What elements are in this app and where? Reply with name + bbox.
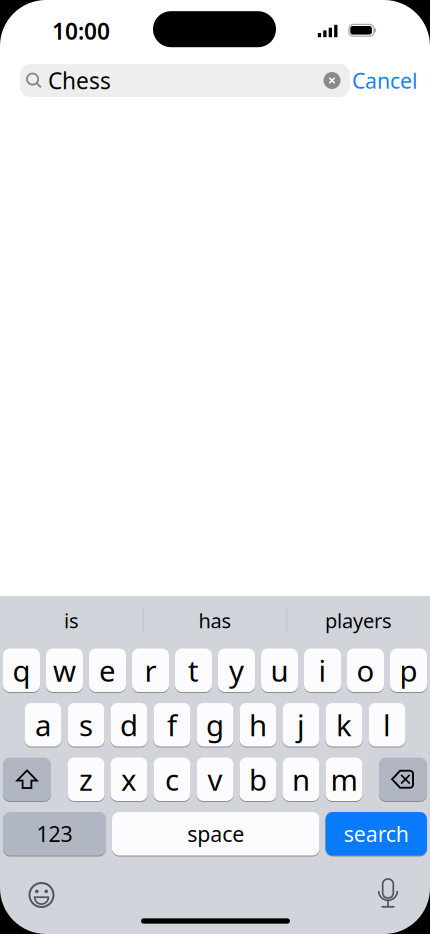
staticText: z — [79, 760, 93, 799]
staticText: n — [292, 760, 310, 799]
staticText: x — [121, 760, 137, 799]
staticText: 123 — [36, 820, 72, 848]
staticText: u — [270, 651, 288, 690]
button[interactable]: g — [196, 703, 233, 746]
staticText: 10:00 — [52, 16, 110, 46]
button[interactable]: w — [46, 648, 83, 692]
button[interactable]: c — [153, 757, 190, 801]
staticText: v — [207, 760, 222, 799]
staticText: Chess — [48, 65, 111, 95]
button[interactable]: v — [196, 757, 233, 801]
staticText: e — [99, 651, 116, 690]
button[interactable]: q — [3, 648, 40, 692]
staticText: l — [383, 705, 391, 744]
button[interactable]: s — [67, 703, 104, 746]
button[interactable]: i — [304, 648, 341, 692]
staticText: w — [53, 651, 76, 690]
staticText: q — [12, 651, 30, 690]
button[interactable]: a — [24, 703, 61, 746]
staticText: k — [336, 705, 352, 744]
button[interactable]: p — [390, 648, 427, 692]
button[interactable]: l — [368, 703, 405, 746]
staticText: Cancel — [352, 66, 418, 95]
button[interactable]: y — [218, 648, 255, 692]
staticText: g — [206, 705, 224, 744]
button[interactable]: Emoji — [28, 882, 54, 908]
button[interactable]: x — [110, 757, 147, 801]
button[interactable]: Cancel — [352, 66, 418, 95]
button[interactable]: space — [112, 812, 319, 855]
button[interactable]: Chess — [20, 64, 350, 97]
staticText: r — [144, 651, 156, 690]
button[interactable]: h — [239, 703, 276, 746]
button[interactable]: j — [282, 703, 319, 746]
button[interactable]: u — [261, 648, 298, 692]
button[interactable]: 123 — [3, 812, 106, 855]
button[interactable]: d — [110, 703, 147, 746]
button[interactable]: z — [67, 757, 104, 801]
staticText: f — [167, 705, 177, 744]
staticText: players — [325, 607, 392, 634]
staticText: c — [165, 760, 179, 799]
staticText: p — [399, 651, 417, 690]
button[interactable]: k — [325, 703, 362, 746]
button[interactable]: search — [325, 812, 427, 855]
button[interactable]: m — [325, 757, 362, 801]
button[interactable]: t — [175, 648, 212, 692]
button[interactable]: Shift — [3, 757, 51, 801]
button[interactable]: Delete — [379, 757, 427, 801]
button[interactable]: r — [132, 648, 169, 692]
button[interactable]: Dictation — [373, 879, 403, 909]
staticText: b — [249, 760, 267, 799]
button[interactable]: e — [89, 648, 126, 692]
staticText: a — [35, 705, 51, 744]
staticText: d — [120, 705, 138, 744]
button[interactable]: Clear text — [323, 72, 340, 89]
staticText: t — [188, 651, 199, 690]
staticText: j — [297, 705, 305, 744]
staticText: search — [344, 820, 409, 848]
button[interactable]: b — [239, 757, 276, 801]
staticText: space — [187, 820, 244, 848]
button[interactable]: players — [287, 598, 430, 643]
staticText: is — [64, 607, 79, 634]
staticText: has — [198, 607, 231, 634]
button[interactable]: f — [153, 703, 190, 746]
staticText: m — [330, 760, 357, 799]
staticText: h — [249, 705, 267, 744]
button[interactable]: is — [0, 598, 143, 643]
staticText: i — [318, 651, 326, 690]
staticText: y — [229, 651, 244, 690]
button[interactable]: n — [282, 757, 319, 801]
staticText: o — [356, 651, 374, 690]
button[interactable]: has — [143, 598, 287, 643]
button[interactable]: o — [347, 648, 384, 692]
staticText: s — [79, 705, 93, 744]
